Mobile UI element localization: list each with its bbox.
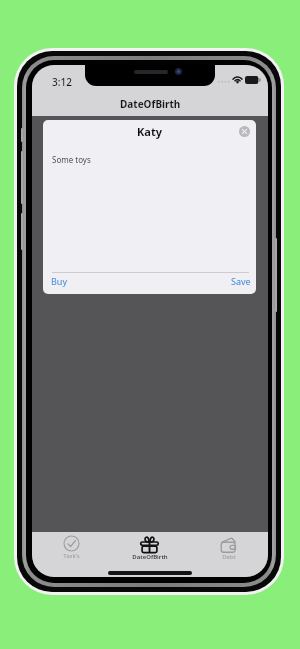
staticText: Save xyxy=(231,275,251,287)
button[interactable]: Debt xyxy=(189,535,268,561)
staticText: DateOfBirth xyxy=(120,97,181,111)
staticText: Some toys xyxy=(52,154,91,165)
button[interactable]: Close xyxy=(239,126,250,137)
staticText: 3:12 xyxy=(52,75,72,89)
staticText: DateOfBirth xyxy=(132,553,168,561)
button[interactable]: Buy xyxy=(50,274,69,288)
button[interactable]: Task's xyxy=(32,535,110,560)
staticText: Task's xyxy=(63,552,80,560)
button[interactable]: DateOfBirth xyxy=(110,535,189,561)
button[interactable]: Save xyxy=(230,274,252,288)
staticText: Debt xyxy=(222,553,236,561)
staticText: Katy xyxy=(137,124,162,139)
staticText: Buy xyxy=(51,275,68,287)
